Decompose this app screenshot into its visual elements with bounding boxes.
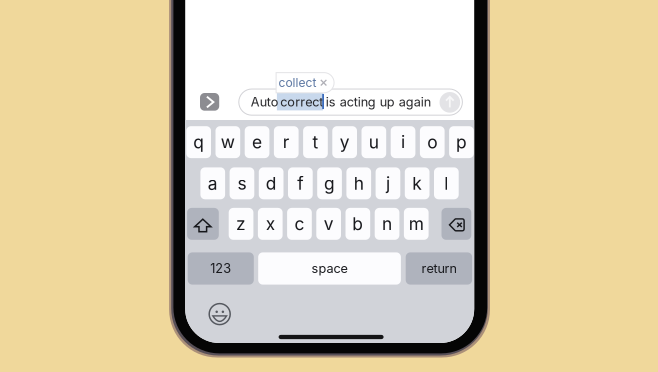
button[interactable]: g <box>317 167 342 199</box>
button[interactable]: y <box>332 126 357 158</box>
staticText: collect <box>279 75 317 90</box>
staticText: q <box>193 132 204 153</box>
button[interactable]: return <box>406 252 472 285</box>
button[interactable]: l <box>434 167 459 199</box>
staticText: n <box>382 213 392 234</box>
staticText: s <box>237 173 246 194</box>
staticText: r <box>283 132 290 153</box>
staticText: Auto <box>251 94 279 110</box>
staticText: t <box>312 132 318 153</box>
staticText: e <box>252 132 262 153</box>
staticText: h <box>354 173 364 194</box>
button[interactable]: w <box>215 126 240 158</box>
button[interactable]: 123 <box>188 252 254 285</box>
button[interactable]: z <box>229 208 253 240</box>
staticText: j <box>386 173 390 194</box>
staticText: m <box>409 213 424 234</box>
staticText: u <box>369 132 379 153</box>
button[interactable]: r <box>274 126 299 158</box>
button[interactable]: t <box>303 126 328 158</box>
staticText: a <box>208 173 218 194</box>
button[interactable]: a <box>200 167 225 199</box>
button[interactable]: f <box>288 167 313 199</box>
button[interactable]: u <box>361 126 386 158</box>
staticText: x <box>266 213 275 234</box>
staticText: d <box>266 173 277 194</box>
button[interactable]: x <box>258 208 283 240</box>
button[interactable]: n <box>375 208 399 240</box>
button[interactable]: Show more options <box>200 93 219 111</box>
button[interactable]: d <box>259 167 283 199</box>
button[interactable]: s <box>230 167 254 199</box>
button[interactable]: Shift <box>187 208 219 240</box>
button[interactable]: Send <box>439 92 460 113</box>
staticText: k <box>412 173 422 194</box>
staticText: y <box>340 132 350 153</box>
staticText: correct <box>280 94 323 110</box>
button[interactable]: o <box>420 126 445 158</box>
button[interactable]: space <box>258 252 401 285</box>
button[interactable]: collect <box>276 73 334 93</box>
staticText: g <box>324 173 335 194</box>
button[interactable]: c <box>287 208 312 240</box>
button[interactable]: p <box>449 126 474 158</box>
staticText: b <box>352 213 363 234</box>
staticText: return <box>421 261 456 276</box>
button[interactable]: Emoji keyboard <box>209 304 230 325</box>
staticText: p <box>456 132 467 153</box>
button[interactable]: m <box>404 208 429 240</box>
staticText: w <box>221 132 235 153</box>
staticText: z <box>236 213 246 234</box>
button[interactable]: Delete <box>441 208 471 240</box>
button[interactable]: b <box>345 208 370 240</box>
button[interactable]: e <box>245 126 269 158</box>
button[interactable]: k <box>405 167 429 199</box>
button[interactable]: q <box>186 126 211 158</box>
staticText: f <box>297 173 303 194</box>
button[interactable]: i <box>391 126 415 158</box>
button[interactable]: v <box>316 208 341 240</box>
staticText: 123 <box>210 261 231 276</box>
staticText: c <box>294 213 304 234</box>
button[interactable]: h <box>346 167 371 199</box>
staticText: l <box>444 173 448 194</box>
button[interactable]: j <box>376 167 400 199</box>
staticText: i <box>401 132 405 153</box>
staticText: v <box>324 213 334 234</box>
staticText: space <box>311 261 347 276</box>
staticText: is acting up again <box>326 94 431 110</box>
staticText: o <box>427 132 437 153</box>
